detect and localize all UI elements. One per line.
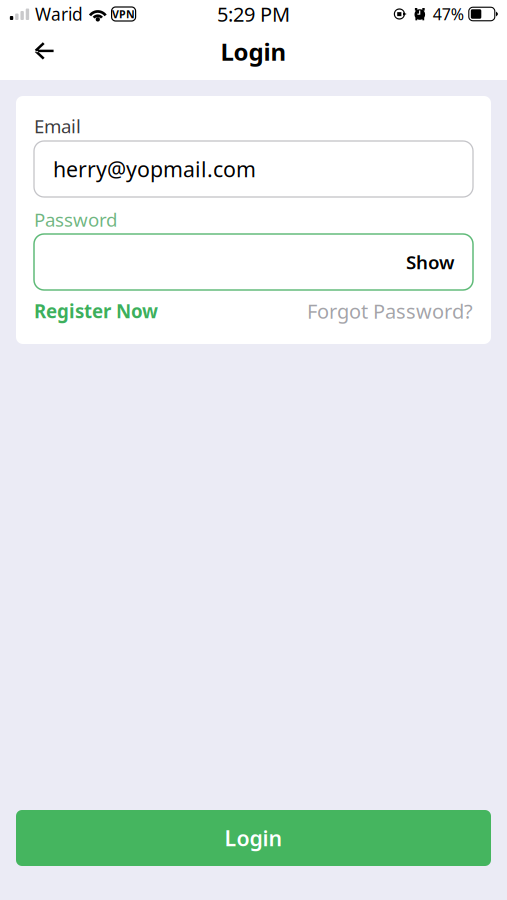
button[interactable]: Back [21, 31, 67, 77]
button[interactable]: Show [398, 235, 454, 289]
staticText: herry@yopmail.com [53, 155, 256, 183]
button[interactable]: Register Now [34, 299, 158, 323]
staticText: Login [220, 36, 286, 67]
button[interactable]: Forgot Password? [307, 298, 473, 324]
staticText: 47% [433, 3, 464, 25]
staticText: VPN [112, 7, 135, 21]
staticText: Show [406, 250, 454, 274]
staticText: Password [34, 207, 117, 232]
staticText: Register Now [34, 299, 158, 323]
staticText: Email [34, 114, 81, 138]
staticText: Warid [35, 2, 83, 25]
staticText: Login [224, 824, 282, 852]
staticText: 5:29 PM [217, 1, 290, 27]
button[interactable]: herry@yopmail.com [34, 141, 473, 197]
staticText: Forgot Password? [307, 298, 473, 324]
button[interactable]: Login [16, 810, 491, 866]
